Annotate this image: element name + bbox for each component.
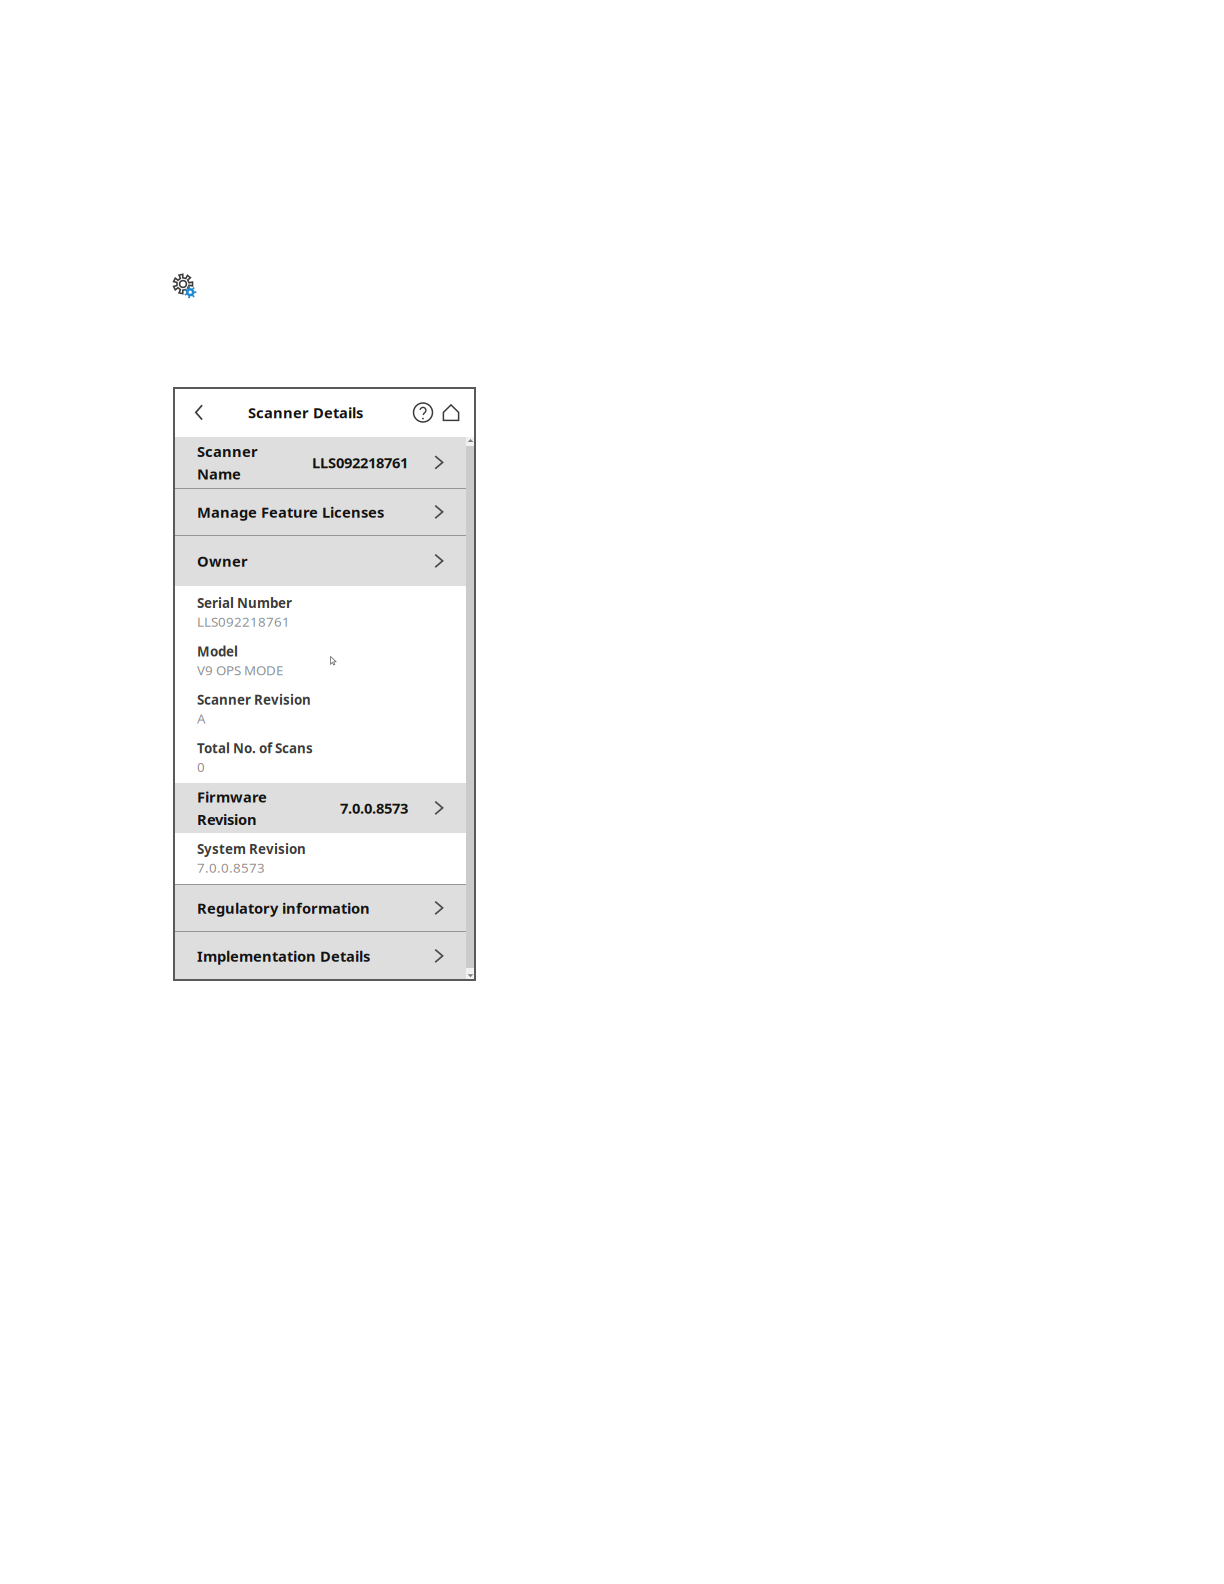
button[interactable]: Home xyxy=(440,395,462,429)
staticText: 7.0.0.8573 xyxy=(197,859,265,876)
button[interactable]: Help xyxy=(410,395,436,429)
button[interactable]: Regulatory information xyxy=(174,885,466,931)
staticText: Firmware xyxy=(197,787,267,806)
staticText: Scanner Details xyxy=(248,403,363,422)
staticText: Total No. of Scans xyxy=(197,739,313,757)
staticText: System Revision xyxy=(197,840,306,858)
staticText: Scanner xyxy=(197,441,258,461)
staticText: 7.0.0.8573 xyxy=(340,798,408,818)
staticText: Implementation Details xyxy=(197,946,370,966)
button[interactable]: Scanner xyxy=(174,437,466,488)
staticText: Name xyxy=(197,464,241,483)
staticText: Scanner Revision xyxy=(197,691,311,708)
button[interactable]: Back xyxy=(174,391,224,433)
staticText: Model xyxy=(197,642,238,660)
staticText: LLS092218761 xyxy=(312,453,408,472)
staticText: Revision xyxy=(197,809,257,829)
staticText: 0 xyxy=(197,758,205,776)
button[interactable]: Owner xyxy=(174,536,466,586)
staticText: A xyxy=(197,709,206,727)
staticText: LLS092218761 xyxy=(197,613,290,630)
staticText: Owner xyxy=(197,551,248,571)
button[interactable]: Manage Feature Licenses xyxy=(174,489,466,535)
staticText: Serial Number xyxy=(197,594,292,612)
staticText: Regulatory information xyxy=(197,898,370,918)
button[interactable]: Firmware xyxy=(174,783,466,833)
button[interactable]: Implementation Details xyxy=(174,932,466,980)
staticText: V9 OPS MODE xyxy=(197,661,283,679)
staticText: Manage Feature Licenses xyxy=(197,502,384,522)
